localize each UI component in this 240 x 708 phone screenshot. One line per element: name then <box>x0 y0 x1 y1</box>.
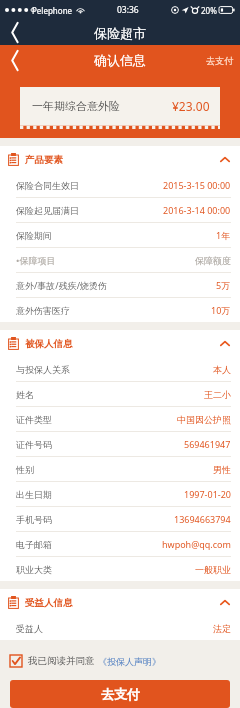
staticText: 1年 <box>216 229 231 241</box>
button[interactable]: 保险期间 <box>0 223 240 247</box>
staticText: 中国因公护照 <box>177 414 231 425</box>
staticText: 本人 <box>213 364 231 375</box>
button[interactable]: 性别 <box>0 457 240 481</box>
staticText: 产品要素 <box>25 154 63 166</box>
staticText: 保障额度 <box>195 255 231 266</box>
staticText: 证件号码 <box>16 439 52 450</box>
staticText: 职业大类 <box>16 564 52 575</box>
button[interactable]: 保险起见届满日 <box>0 198 240 222</box>
button[interactable]: 手机号码 <box>0 507 240 531</box>
button[interactable]: 姓名 <box>0 382 240 406</box>
staticText: 20% <box>201 5 217 16</box>
button[interactable]: 受益人信息 <box>0 589 240 616</box>
button[interactable]: •保障项目 <box>0 248 240 272</box>
button[interactable]: 出生日期 <box>0 482 240 506</box>
staticText: 一般职业 <box>195 564 231 575</box>
staticText: hwpoh@qq.com <box>162 538 231 550</box>
staticText: 出生日期 <box>16 489 52 500</box>
staticText: 1997-01-20 <box>184 488 231 500</box>
staticText: 性别 <box>16 464 34 475</box>
button[interactable]: 证件类型 <box>0 407 240 431</box>
button[interactable]: Back <box>5 22 26 43</box>
staticText: 手机号码 <box>16 514 52 525</box>
staticText: 5万 <box>216 279 231 291</box>
button[interactable]: Back <box>5 50 26 71</box>
button[interactable]: 意外/事故/残疾/烧烫伤 <box>0 273 240 297</box>
staticText: 保险期间 <box>16 230 52 241</box>
staticText: 保险超市 <box>94 25 146 41</box>
button[interactable]: 证件号码 <box>0 432 240 456</box>
button[interactable]: 去支付 <box>10 680 230 708</box>
staticText: 证件类型 <box>16 414 52 425</box>
button[interactable]: 意外伤害医疗 <box>0 298 240 322</box>
staticText: 姓名 <box>16 389 34 400</box>
staticText: 去支付 <box>206 55 233 66</box>
staticText: 一年期综合意外险 <box>32 99 120 113</box>
staticText: 王二小 <box>204 389 231 400</box>
staticText: •保障项目 <box>16 254 56 266</box>
staticText: 03:36 <box>117 4 139 16</box>
staticText: 569461947 <box>184 438 231 450</box>
staticText: 电子邮箱 <box>16 539 52 550</box>
button[interactable]: 与投保人关系 <box>0 357 240 381</box>
staticText: 《投保人声明》 <box>98 656 161 667</box>
staticText: ¥23.00 <box>172 98 210 114</box>
button[interactable]: 受益人 <box>0 616 240 640</box>
button[interactable]: 去支付 <box>206 55 233 66</box>
staticText: 受益人 <box>16 623 43 634</box>
button[interactable]: 被保人信息 <box>0 330 240 357</box>
staticText: 去支付 <box>101 686 140 702</box>
staticText: 保险合同生效日 <box>16 180 79 191</box>
staticText: Pelephone <box>32 5 73 16</box>
button[interactable]: 电子邮箱 <box>0 532 240 556</box>
staticText: 确认信息 <box>94 52 146 68</box>
staticText: 意外伤害医疗 <box>16 305 70 316</box>
button[interactable]: 我已阅读并同意 <box>10 651 230 671</box>
staticText: 意外/事故/残疾/烧烫伤 <box>16 279 108 291</box>
staticText: 受益人信息 <box>25 597 73 609</box>
button[interactable]: 保险合同生效日 <box>0 173 240 197</box>
button[interactable]: 职业大类 <box>0 557 240 581</box>
staticText: 保险起见届满日 <box>16 205 79 216</box>
staticText: 2015-3-15 00:00 <box>163 179 231 191</box>
staticText: 被保人信息 <box>25 338 73 350</box>
staticText: 13694663794 <box>174 513 231 525</box>
staticText: 男性 <box>213 464 231 475</box>
staticText: 法定 <box>213 623 231 634</box>
button[interactable]: 产品要素 <box>0 146 240 173</box>
staticText: 2016-3-14 00:00 <box>163 204 231 216</box>
staticText: 10万 <box>211 304 231 316</box>
staticText: 与投保人关系 <box>16 364 70 375</box>
staticText: 我已阅读并同意 <box>28 655 95 667</box>
